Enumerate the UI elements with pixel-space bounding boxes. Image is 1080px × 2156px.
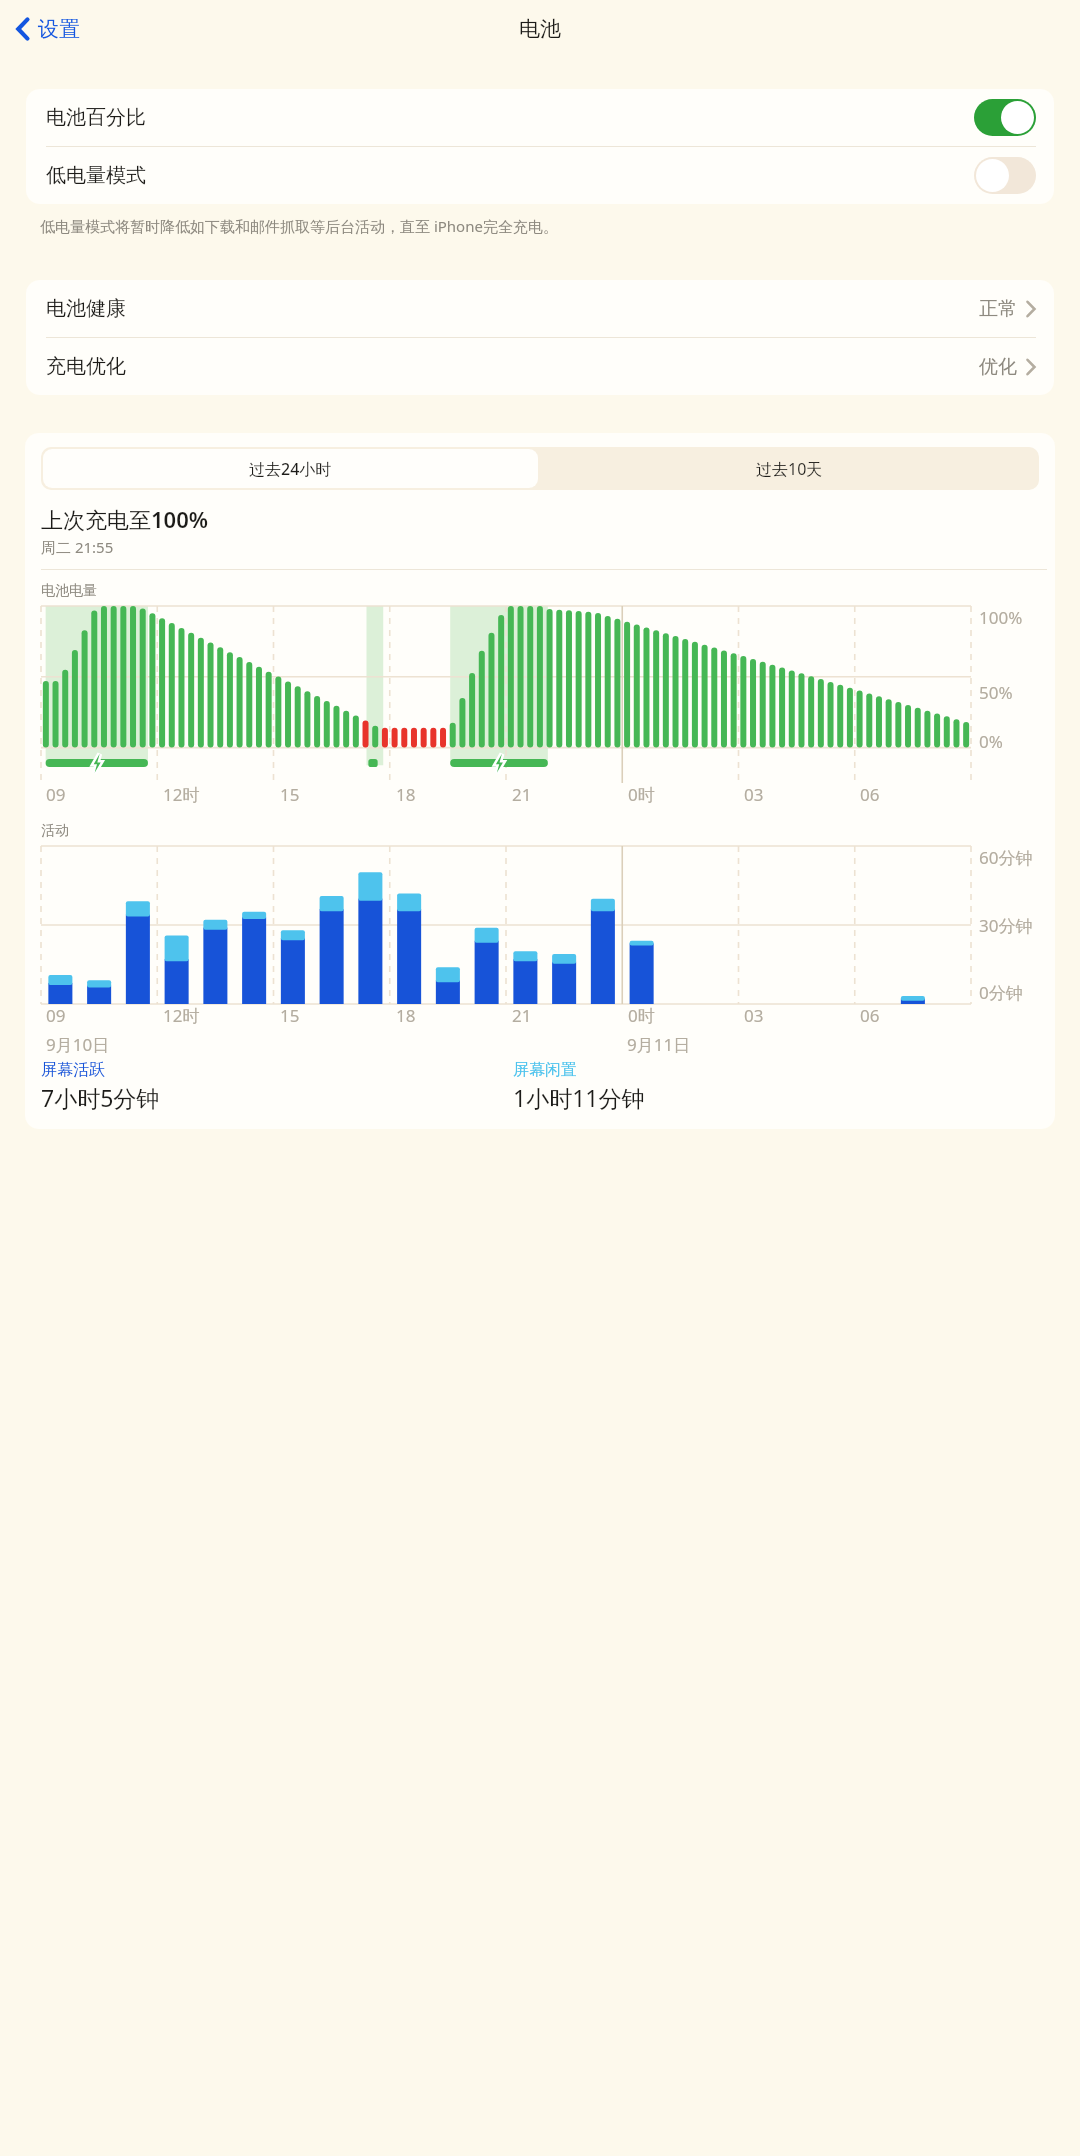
staticText: 屏幕闲置 <box>513 1060 577 1080</box>
staticText: 电池电量 <box>41 582 97 600</box>
button[interactable]: 低电量模式 <box>26 147 1054 204</box>
staticText: 15 <box>280 783 300 806</box>
staticText: 21 <box>512 783 532 806</box>
staticText: 电池 <box>519 16 561 42</box>
button[interactable]: 过去24小时 <box>43 449 538 488</box>
staticText: 0时 <box>628 1004 655 1027</box>
staticText: 09 <box>46 1004 66 1027</box>
staticText: 06 <box>860 783 880 806</box>
staticText: 60分钟 <box>979 846 1033 869</box>
other: 电池百分比 <box>974 99 1036 136</box>
staticText: 9月10日 <box>46 1033 110 1056</box>
staticText: 0分钟 <box>979 981 1023 1004</box>
staticText: 12时 <box>163 783 200 806</box>
staticText: 设置 <box>38 16 80 42</box>
staticText: 03 <box>744 1004 764 1027</box>
staticText: 30分钟 <box>979 914 1033 937</box>
staticText: 电池健康 <box>46 296 979 321</box>
staticText: 03 <box>744 783 764 806</box>
staticText: 充电优化 <box>46 354 979 379</box>
staticText: 周二 21:55 <box>41 537 114 557</box>
button[interactable]: 充电优化 <box>26 338 1054 395</box>
staticText: 活动 <box>41 822 69 840</box>
staticText: 优化 <box>979 355 1017 379</box>
button[interactable]: 设置 <box>10 12 86 46</box>
staticText: 过去24小时 <box>249 458 332 480</box>
button[interactable]: 电池百分比 <box>26 89 1054 146</box>
staticText: 100% <box>979 606 1023 629</box>
staticText: 低电量模式将暂时降低如下载和邮件抓取等后台活动，直至 iPhone完全充电。 <box>40 216 558 236</box>
staticText: 18 <box>396 783 416 806</box>
staticText: 上次充电至100% <box>41 504 209 534</box>
staticText: 电池百分比 <box>46 105 974 130</box>
staticText: 50% <box>979 681 1013 704</box>
staticText: 06 <box>860 1004 880 1027</box>
staticText: 0时 <box>628 783 655 806</box>
staticText: 正常 <box>979 297 1017 321</box>
staticText: 21 <box>512 1004 532 1027</box>
staticText: 0% <box>979 730 1003 753</box>
staticText: 9月11日 <box>627 1033 691 1056</box>
button[interactable]: 过去10天 <box>540 447 1039 490</box>
staticText: 1小时11分钟 <box>513 1082 645 1113</box>
other: 低电量模式 <box>974 157 1036 194</box>
staticText: 18 <box>396 1004 416 1027</box>
staticText: 15 <box>280 1004 300 1027</box>
staticText: 7小时5分钟 <box>41 1082 160 1113</box>
staticText: 12时 <box>163 1004 200 1027</box>
staticText: 09 <box>46 783 66 806</box>
staticText: 过去10天 <box>756 458 823 480</box>
button[interactable]: 电池健康 <box>26 280 1054 337</box>
staticText: 低电量模式 <box>46 163 974 188</box>
staticText: 屏幕活跃 <box>41 1060 105 1080</box>
